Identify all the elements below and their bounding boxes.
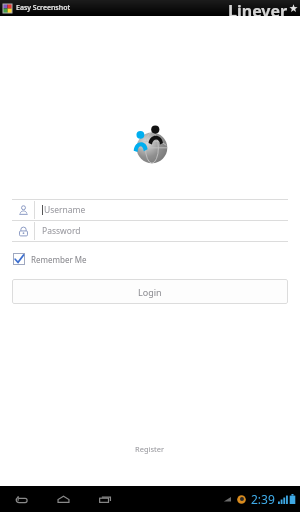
button[interactable]: Recent apps [93, 488, 117, 510]
staticText: Username [44, 204, 86, 216]
staticText: Remember Me [31, 254, 87, 265]
staticText: Linever [228, 0, 288, 16]
button[interactable]: Back [9, 488, 33, 510]
other: Password [18, 226, 29, 237]
staticText: Register [135, 444, 165, 454]
staticText: Login [138, 286, 162, 298]
button[interactable]: Remember Me [11, 250, 89, 268]
other: Easy Screenshot [3, 4, 12, 13]
button[interactable]: Easy Screenshot [3, 3, 71, 13]
staticText: Password [42, 225, 81, 237]
button[interactable]: Login [12, 279, 288, 304]
button[interactable]: Password [12, 221, 288, 241]
button[interactable]: Register [129, 438, 171, 460]
button[interactable]: Username [12, 200, 288, 220]
other: Username [18, 205, 29, 216]
staticText: Easy Screenshot [16, 3, 71, 13]
staticText: 2:39 [251, 491, 275, 507]
button[interactable]: Home [51, 488, 75, 510]
